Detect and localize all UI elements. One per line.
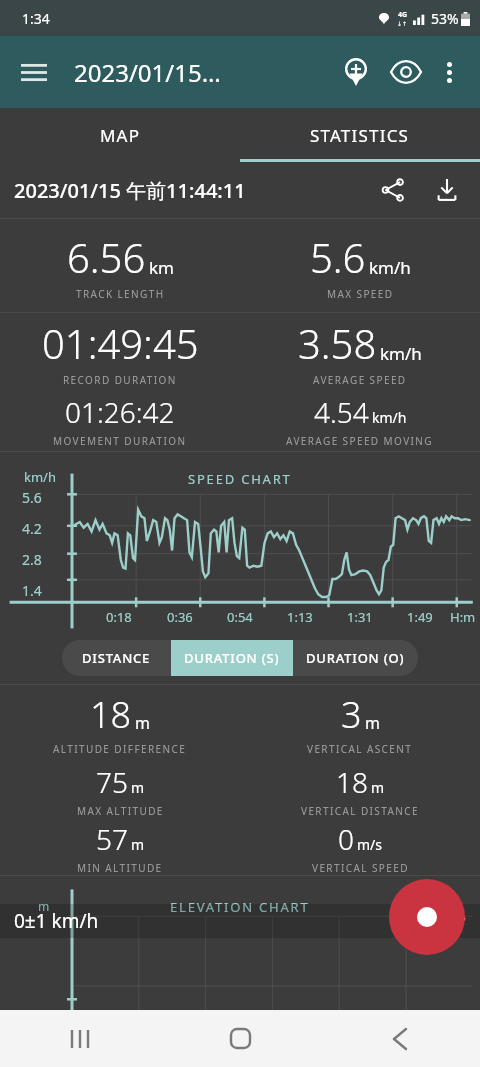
staticText: m/s <box>357 835 383 854</box>
staticText: km/h <box>380 342 422 365</box>
staticText: km/h <box>372 408 407 427</box>
staticText: m <box>371 778 385 797</box>
staticText: 1:49 <box>407 608 433 626</box>
button[interactable]: Download <box>426 169 468 211</box>
staticText: 4G <box>398 10 408 20</box>
staticText: m <box>38 898 50 914</box>
staticText: 3 <box>341 690 362 739</box>
staticText: m <box>135 712 150 734</box>
staticText: ALTITUDE DIFFERENCE <box>53 742 187 756</box>
staticText: ↓↑ <box>397 20 408 27</box>
staticText: 1:34 <box>22 9 50 28</box>
staticText: ELEVATION CHART <box>170 898 310 916</box>
button[interactable]: Record <box>389 879 465 955</box>
staticText: RECORD DURATION <box>63 373 177 387</box>
button[interactable]: More options <box>430 53 468 91</box>
staticText: 57 <box>96 820 128 858</box>
button[interactable]: Share <box>372 169 414 211</box>
staticText: DISTANCE <box>82 649 151 667</box>
staticText: 0:18 <box>106 608 132 626</box>
staticText: m <box>131 835 145 854</box>
staticText: TRACK LENGTH <box>76 287 165 301</box>
staticText: 1:13 <box>287 608 313 626</box>
staticText: 18 <box>336 763 368 801</box>
staticText: 2023/01/15… <box>74 56 221 89</box>
staticText: 4.2 <box>22 519 42 538</box>
button[interactable]: Menu <box>12 50 56 94</box>
button[interactable]: STATISTICS <box>240 108 480 162</box>
staticText: MAX ALTITUDE <box>77 804 164 818</box>
staticText: MAP <box>100 124 141 147</box>
staticText: AVERAGE SPEED MOVING <box>286 434 434 448</box>
button[interactable]: MAP <box>0 108 240 162</box>
staticText: VERTICAL DISTANCE <box>301 804 419 818</box>
staticText: 5.6 <box>310 230 366 284</box>
staticText: MAX SPEED <box>327 287 394 301</box>
staticText: VERTICAL SPEED <box>312 861 409 875</box>
staticText: 0±1 km/h <box>14 908 99 934</box>
staticText: km/h <box>369 256 411 279</box>
staticText: AVERAGE SPEED <box>313 373 407 387</box>
button[interactable]: DISTANCE <box>62 640 171 676</box>
button[interactable]: DURATION (S) <box>171 640 293 676</box>
staticText: 0:36 <box>167 608 193 626</box>
staticText: 2023/01/15 午前11:44:11 <box>14 177 246 204</box>
staticText: VERTICAL ASCENT <box>307 742 413 756</box>
button[interactable]: Home <box>160 1010 320 1067</box>
staticText: 01:49:45 <box>42 316 199 370</box>
staticText: 1:31 <box>347 608 373 626</box>
staticText: H:m <box>450 608 476 626</box>
staticText: 01:26:42 <box>65 393 175 431</box>
staticText: 53% <box>431 9 459 28</box>
staticText: 4.54 <box>314 393 369 431</box>
staticText: 5.6 <box>22 488 42 507</box>
button[interactable]: Recents <box>0 1010 160 1067</box>
staticText: 6.56 <box>67 230 146 284</box>
staticText: STATISTICS <box>310 124 410 147</box>
staticText: 3.58 <box>298 316 377 370</box>
button[interactable]: Add waypoint <box>334 50 378 94</box>
staticText: DURATION (S) <box>184 649 280 667</box>
staticText: MOVEMENT DURATION <box>53 434 187 448</box>
staticText: 2.8 <box>22 550 42 569</box>
staticText: km/h <box>24 468 56 486</box>
staticText: 0:54 <box>227 608 253 626</box>
staticText: 75 <box>96 763 128 801</box>
staticText: m <box>131 778 145 797</box>
staticText: MIN ALTITUDE <box>77 861 163 875</box>
button[interactable]: Back <box>320 1010 480 1067</box>
staticText: ---° <box>445 911 466 931</box>
staticText: 1.4 <box>22 581 42 600</box>
staticText: m <box>365 712 380 734</box>
staticText: 0 <box>338 820 354 858</box>
staticText: km <box>149 256 174 279</box>
staticText: 18 <box>90 690 132 739</box>
button[interactable]: Visibility <box>384 50 428 94</box>
staticText: SPEED CHART <box>188 470 292 488</box>
staticText: DURATION (O) <box>306 649 405 667</box>
button[interactable]: DURATION (O) <box>293 640 418 676</box>
